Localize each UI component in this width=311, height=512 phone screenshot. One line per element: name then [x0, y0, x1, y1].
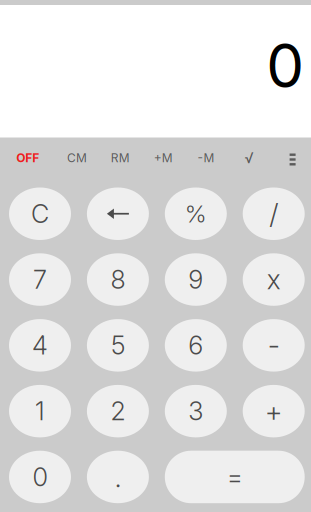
staticText: 0: [32, 462, 47, 492]
staticText: 0: [266, 29, 304, 102]
button[interactable]: CM: [56, 143, 98, 173]
button[interactable]: 1: [9, 385, 71, 437]
staticText: 7: [33, 264, 47, 295]
button[interactable]: -: [243, 319, 305, 372]
staticText: C: [31, 198, 49, 229]
button[interactable]: +M: [142, 143, 184, 173]
staticText: 8: [110, 264, 125, 295]
staticText: √: [245, 149, 254, 167]
staticText: x: [267, 263, 281, 296]
staticText: 1: [35, 396, 45, 426]
staticText: 5: [111, 330, 125, 361]
button[interactable]: .: [87, 451, 149, 503]
button[interactable]: 6: [165, 319, 227, 372]
button[interactable]: 8: [87, 253, 149, 306]
button[interactable]: 5: [87, 319, 149, 372]
staticText: 6: [188, 330, 203, 361]
staticText: 3: [188, 396, 203, 426]
staticText: -M: [198, 151, 215, 165]
staticText: =: [227, 462, 243, 492]
button[interactable]: %: [165, 187, 227, 240]
button[interactable]: x: [243, 253, 305, 306]
button[interactable]: 2: [87, 385, 149, 437]
button[interactable]: +: [243, 385, 305, 437]
staticText: RM: [111, 151, 130, 165]
staticText: -: [268, 328, 280, 362]
button[interactable]: 9: [165, 253, 227, 306]
button[interactable]: Backspace: [87, 187, 149, 240]
button[interactable]: -M: [185, 143, 227, 173]
button[interactable]: 0: [9, 451, 71, 503]
button[interactable]: /: [243, 187, 305, 240]
staticText: +: [265, 394, 283, 428]
button[interactable]: =: [165, 451, 305, 503]
staticText: OFF: [16, 151, 39, 165]
button[interactable]: 4: [9, 319, 71, 372]
staticText: .: [114, 460, 121, 494]
button[interactable]: 7: [9, 253, 71, 306]
button[interactable]: RM: [99, 143, 141, 173]
button[interactable]: OFF: [7, 143, 49, 173]
button[interactable]: Menu: [276, 144, 310, 174]
staticText: 9: [188, 264, 203, 295]
staticText: +M: [154, 151, 173, 165]
button[interactable]: 3: [165, 385, 227, 437]
staticText: %: [185, 199, 207, 228]
staticText: 4: [32, 330, 48, 361]
staticText: CM: [67, 151, 87, 165]
staticText: /: [269, 197, 278, 231]
staticText: 2: [110, 396, 125, 426]
button[interactable]: C: [9, 187, 71, 240]
button[interactable]: √: [228, 143, 270, 173]
